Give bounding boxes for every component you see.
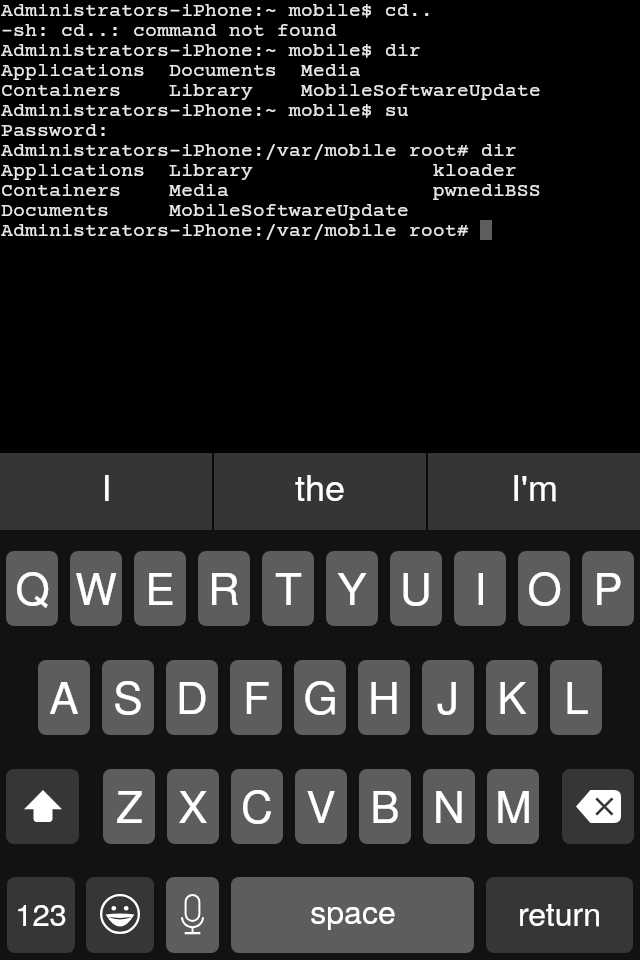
button[interactable]: O	[518, 551, 570, 626]
button[interactable]: G	[294, 660, 346, 735]
button[interactable]: T	[262, 551, 314, 626]
staticText: Applications Documents Media	[1, 60, 361, 82]
staticText: T	[275, 554, 302, 617]
staticText: V	[306, 772, 336, 835]
staticText: G	[303, 663, 338, 726]
staticText: A	[49, 663, 79, 726]
staticText: Administrators-iPhone:/var/mobile root#	[1, 220, 481, 242]
staticText: space	[310, 887, 396, 933]
staticText: Administrators-iPhone:~ mobile$ cd..	[1, 0, 433, 22]
staticText: Containers Media pwnediBSS	[1, 180, 541, 202]
staticText: Z	[116, 772, 143, 835]
button[interactable]: P	[582, 551, 634, 626]
staticText: K	[497, 663, 527, 726]
button[interactable]: I	[0, 453, 212, 530]
button[interactable]: return	[486, 877, 633, 953]
button[interactable]: Q	[6, 551, 58, 626]
staticText: U	[400, 554, 432, 617]
staticText: N	[433, 772, 465, 835]
button[interactable]: D	[166, 660, 218, 735]
staticText: the	[295, 460, 345, 512]
staticText: X	[178, 772, 208, 835]
button[interactable]: Backspace	[562, 769, 634, 844]
button[interactable]: L	[550, 660, 602, 735]
button[interactable]: Shift	[6, 769, 79, 844]
staticText: L	[564, 663, 589, 726]
staticText: Administrators-iPhone:~ mobile$ su	[1, 100, 409, 122]
staticText: Administrators-iPhone:/var/mobile root# …	[1, 140, 517, 162]
staticText: O	[527, 554, 562, 617]
staticText: M	[495, 772, 532, 835]
button[interactable]: C	[231, 769, 283, 844]
staticText: S	[113, 663, 143, 726]
staticText: B	[370, 772, 400, 835]
button[interactable]: H	[358, 660, 410, 735]
button[interactable]: Y	[326, 551, 378, 626]
button[interactable]: X	[167, 769, 219, 844]
button[interactable]: J	[422, 660, 474, 735]
staticText: Q	[15, 554, 50, 617]
staticText: J	[437, 663, 459, 726]
button[interactable]: I	[454, 551, 506, 626]
button[interactable]: F	[230, 660, 282, 735]
button[interactable]: R	[198, 551, 250, 626]
button[interactable]: 123	[7, 877, 75, 953]
button[interactable]: V	[295, 769, 347, 844]
staticText: return	[518, 889, 601, 935]
button[interactable]: Dictation	[166, 877, 219, 953]
button[interactable]: Emoji	[86, 877, 154, 953]
button[interactable]: S	[102, 660, 154, 735]
staticText: P	[593, 554, 623, 617]
button[interactable]: the	[214, 453, 426, 530]
button[interactable]: K	[486, 660, 538, 735]
button[interactable]: M	[487, 769, 539, 844]
staticText: Containers Library MobileSoftwareUpdate	[1, 80, 541, 102]
staticText: I	[474, 554, 487, 617]
button[interactable]: A	[38, 660, 90, 735]
staticText: Applications Library kloader	[1, 160, 517, 182]
staticText: Y	[337, 554, 367, 617]
staticText: Password:	[1, 120, 109, 142]
staticText: Administrators-iPhone:~ mobile$ dir	[1, 40, 421, 62]
staticText: Documents MobileSoftwareUpdate	[1, 200, 409, 222]
button[interactable]: I'm	[428, 453, 640, 530]
staticText: F	[243, 663, 270, 726]
staticText: D	[176, 663, 208, 726]
button[interactable]: W	[70, 551, 122, 626]
button[interactable]: B	[359, 769, 411, 844]
button[interactable]: E	[134, 551, 186, 626]
staticText: I'm	[511, 460, 558, 512]
button[interactable]: N	[423, 769, 475, 844]
button[interactable]: U	[390, 551, 442, 626]
staticText: -sh: cd..: command not found	[1, 20, 337, 42]
staticText: W	[75, 554, 117, 617]
staticText: 123	[15, 890, 67, 934]
staticText: E	[145, 554, 175, 617]
staticText: I	[101, 460, 112, 512]
staticText: R	[208, 554, 240, 617]
button[interactable]: Z	[103, 769, 155, 844]
staticText: H	[368, 663, 400, 726]
button[interactable]: space	[231, 877, 474, 953]
staticText: C	[241, 772, 273, 835]
